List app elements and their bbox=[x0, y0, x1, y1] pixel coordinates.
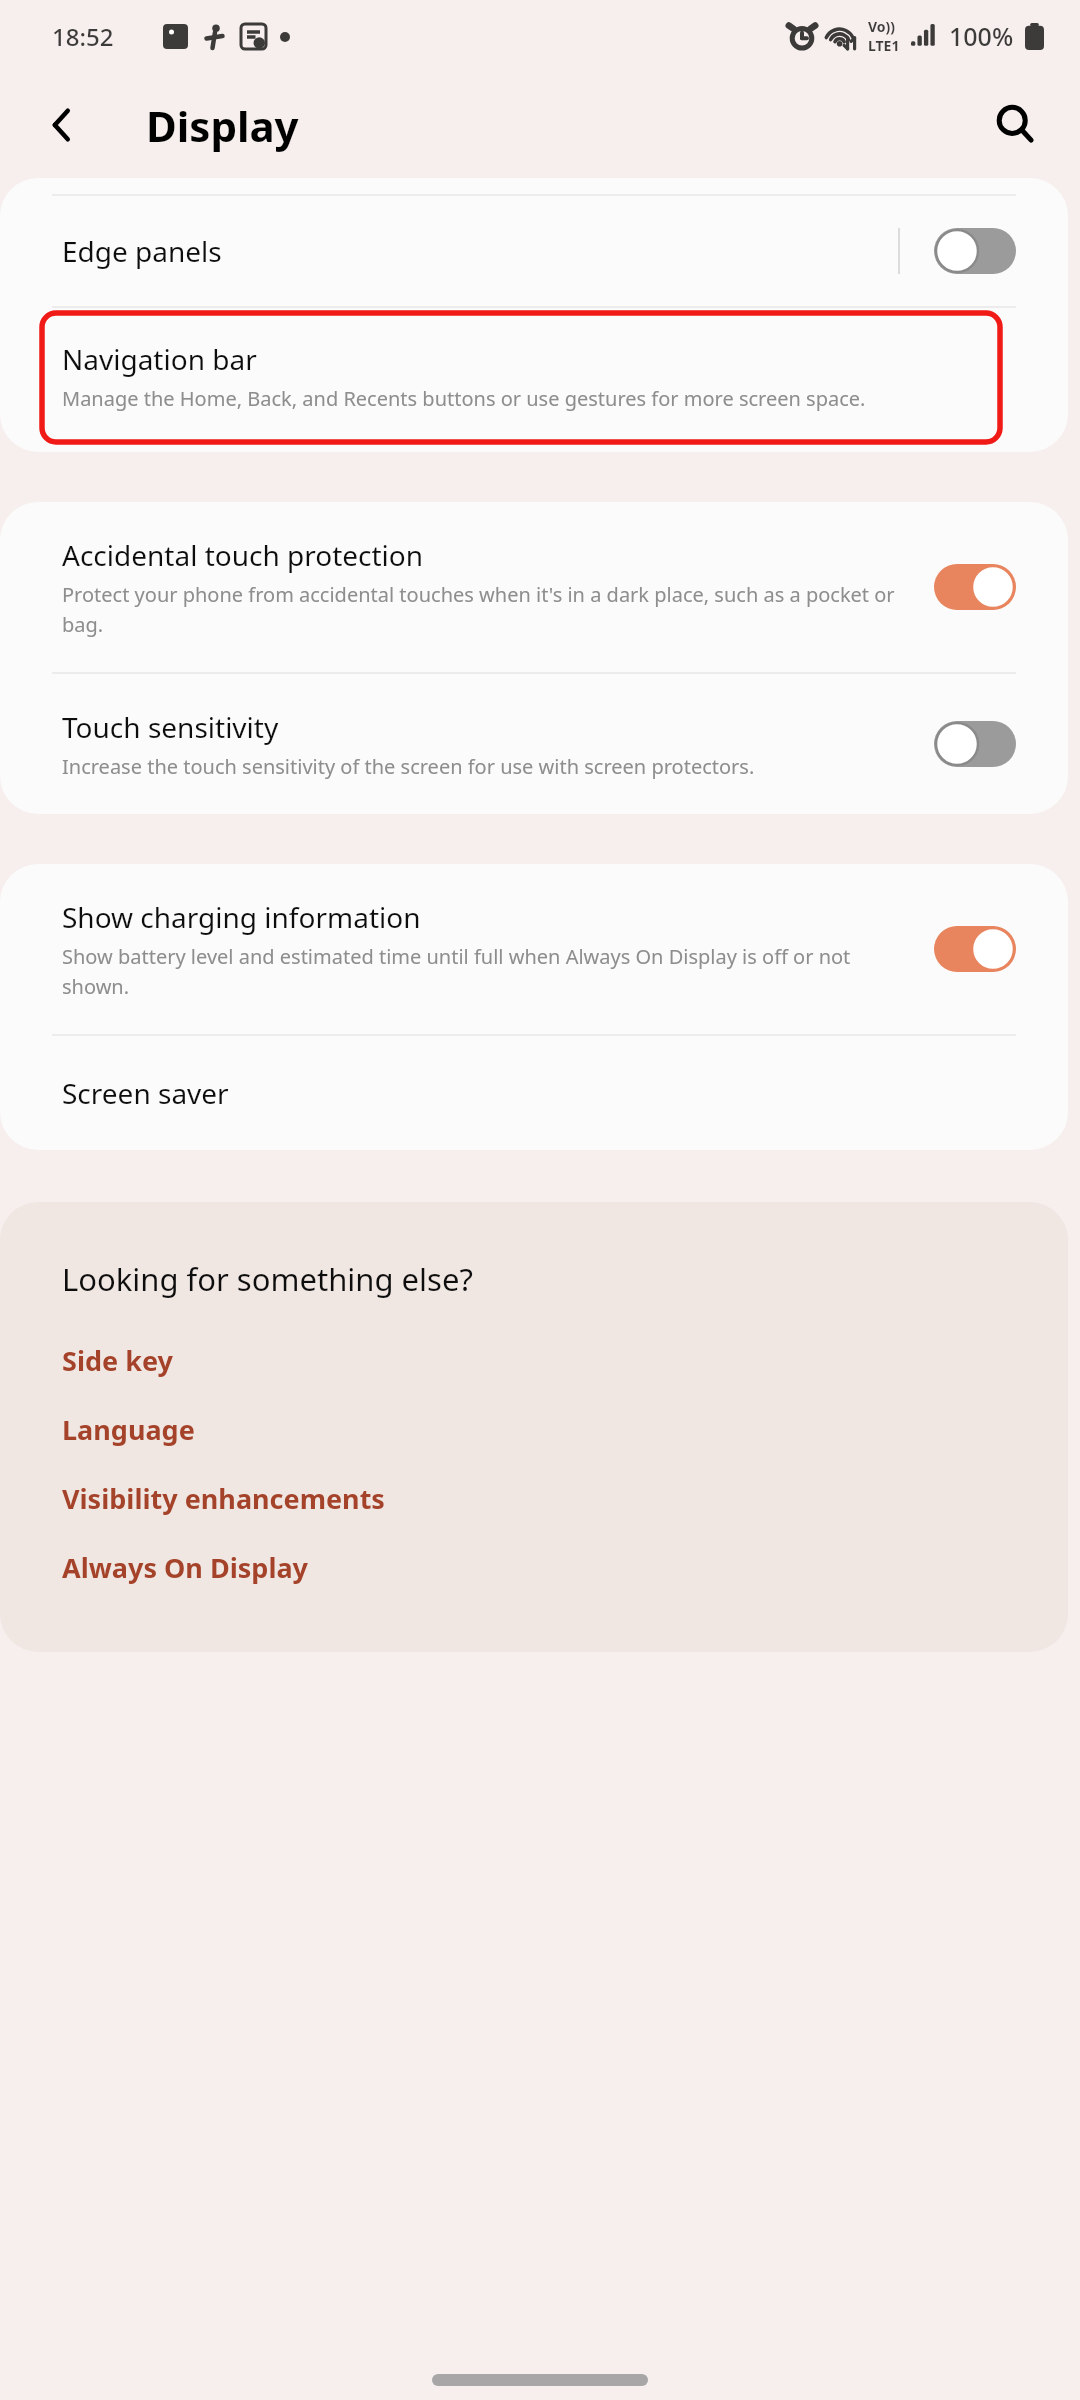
staticText: Touch sensitivity bbox=[62, 708, 279, 746]
staticText: Show charging information bbox=[62, 898, 421, 936]
button[interactable]: Visibility enhancements bbox=[62, 1464, 1028, 1533]
staticText: LTE1 bbox=[868, 36, 900, 55]
staticText: Accidental touch protection bbox=[62, 536, 424, 574]
staticText: 18:52 bbox=[52, 20, 114, 53]
button[interactable]: Edge panels bbox=[0, 196, 1068, 306]
staticText: Manage the Home, Back, and Recents butto… bbox=[62, 385, 866, 412]
button[interactable]: Show charging information bbox=[0, 864, 1068, 1034]
staticText: Display bbox=[146, 97, 299, 154]
button[interactable]: Toggle off bbox=[934, 228, 1016, 274]
staticText: Show battery level and estimated time un… bbox=[62, 943, 908, 1000]
staticText: Vo)) bbox=[868, 17, 896, 36]
button[interactable]: Language bbox=[62, 1395, 1028, 1464]
button[interactable]: Side key bbox=[62, 1326, 1028, 1395]
button[interactable]: Always On Display bbox=[62, 1533, 1028, 1602]
button[interactable]: Navigation bar bbox=[42, 313, 1000, 442]
button[interactable]: Toggle on bbox=[934, 926, 1016, 972]
staticText: Edge panels bbox=[62, 232, 222, 270]
staticText: Screen saver bbox=[62, 1074, 229, 1112]
button[interactable]: Toggle off bbox=[934, 721, 1016, 767]
button[interactable]: Screen saver bbox=[0, 1036, 1068, 1150]
button[interactable]: Search bbox=[978, 87, 1054, 163]
button[interactable]: Touch sensitivity bbox=[0, 674, 1068, 814]
staticText: Protect your phone from accidental touch… bbox=[62, 581, 908, 638]
staticText: Side key bbox=[62, 1342, 173, 1379]
staticText: 100% bbox=[949, 19, 1014, 53]
button[interactable]: Back bbox=[28, 90, 98, 160]
staticText: Language bbox=[62, 1411, 195, 1448]
staticText: Visibility enhancements bbox=[62, 1480, 385, 1517]
button[interactable]: Accidental touch protection bbox=[0, 502, 1068, 672]
staticText: Navigation bar bbox=[62, 340, 257, 378]
staticText: Increase the touch sensitivity of the sc… bbox=[62, 753, 755, 780]
staticText: Always On Display bbox=[62, 1549, 309, 1586]
button[interactable]: Toggle on bbox=[934, 564, 1016, 610]
staticText: Looking for something else? bbox=[62, 1258, 473, 1300]
